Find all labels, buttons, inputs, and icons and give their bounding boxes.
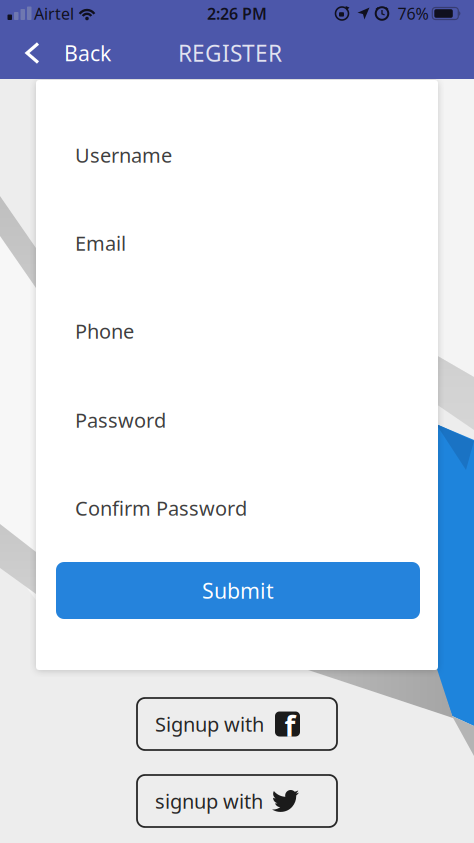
staticText: Submit — [202, 576, 274, 605]
staticText: Phone — [75, 318, 134, 344]
staticText: f — [284, 707, 295, 745]
staticText: 76% — [397, 3, 428, 24]
button[interactable]: Username — [56, 129, 418, 181]
staticText: Signup with — [155, 711, 264, 737]
staticText: Password — [75, 407, 166, 433]
staticText: REGISTER — [178, 38, 282, 68]
button[interactable]: Signup with — [137, 698, 337, 750]
button[interactable]: Phone — [56, 305, 418, 357]
staticText: Username — [75, 142, 172, 168]
staticText: Email — [75, 230, 126, 256]
staticText: Airtel — [34, 3, 74, 24]
button[interactable]: signup with — [137, 775, 337, 827]
button[interactable]: Email — [56, 217, 418, 269]
button[interactable]: Password — [56, 394, 418, 446]
staticText: 2:26 PM — [207, 3, 267, 24]
button[interactable]: Submit — [56, 562, 420, 619]
button[interactable]: Confirm Password — [56, 482, 418, 534]
staticText: Confirm Password — [75, 495, 247, 521]
staticText: signup with — [155, 788, 263, 814]
button[interactable]: Back — [25, 27, 111, 79]
staticText: Back — [64, 39, 111, 67]
